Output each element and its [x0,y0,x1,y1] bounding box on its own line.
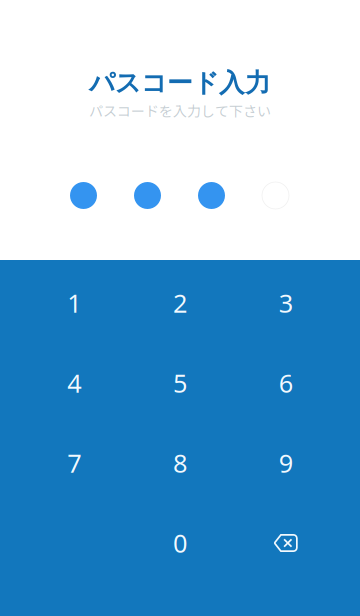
staticText: 3 [279,286,293,320]
button[interactable]: 5 [127,343,233,423]
button[interactable]: 0 [127,503,233,583]
staticText: 0 [173,526,187,560]
staticText: パスコード入力 [89,67,271,99]
button[interactable]: 9 [233,423,338,503]
staticText: 9 [279,446,293,480]
staticText: 7 [67,446,81,480]
staticText: パスコードを入力して下さい [89,100,271,121]
staticText: 6 [279,366,293,400]
button[interactable]: 7 [21,423,127,503]
button[interactable]: Delete [233,503,338,583]
button[interactable]: 4 [21,343,127,423]
button[interactable]: 6 [233,343,338,423]
button[interactable]: 8 [127,423,233,503]
staticText: 5 [173,366,187,400]
staticText: 8 [173,446,187,480]
button[interactable]: 2 [127,263,233,343]
button[interactable]: 3 [233,263,338,343]
staticText: 2 [173,286,187,320]
staticText: 4 [67,366,81,400]
button[interactable]: 1 [21,263,127,343]
staticText: 1 [67,286,81,320]
